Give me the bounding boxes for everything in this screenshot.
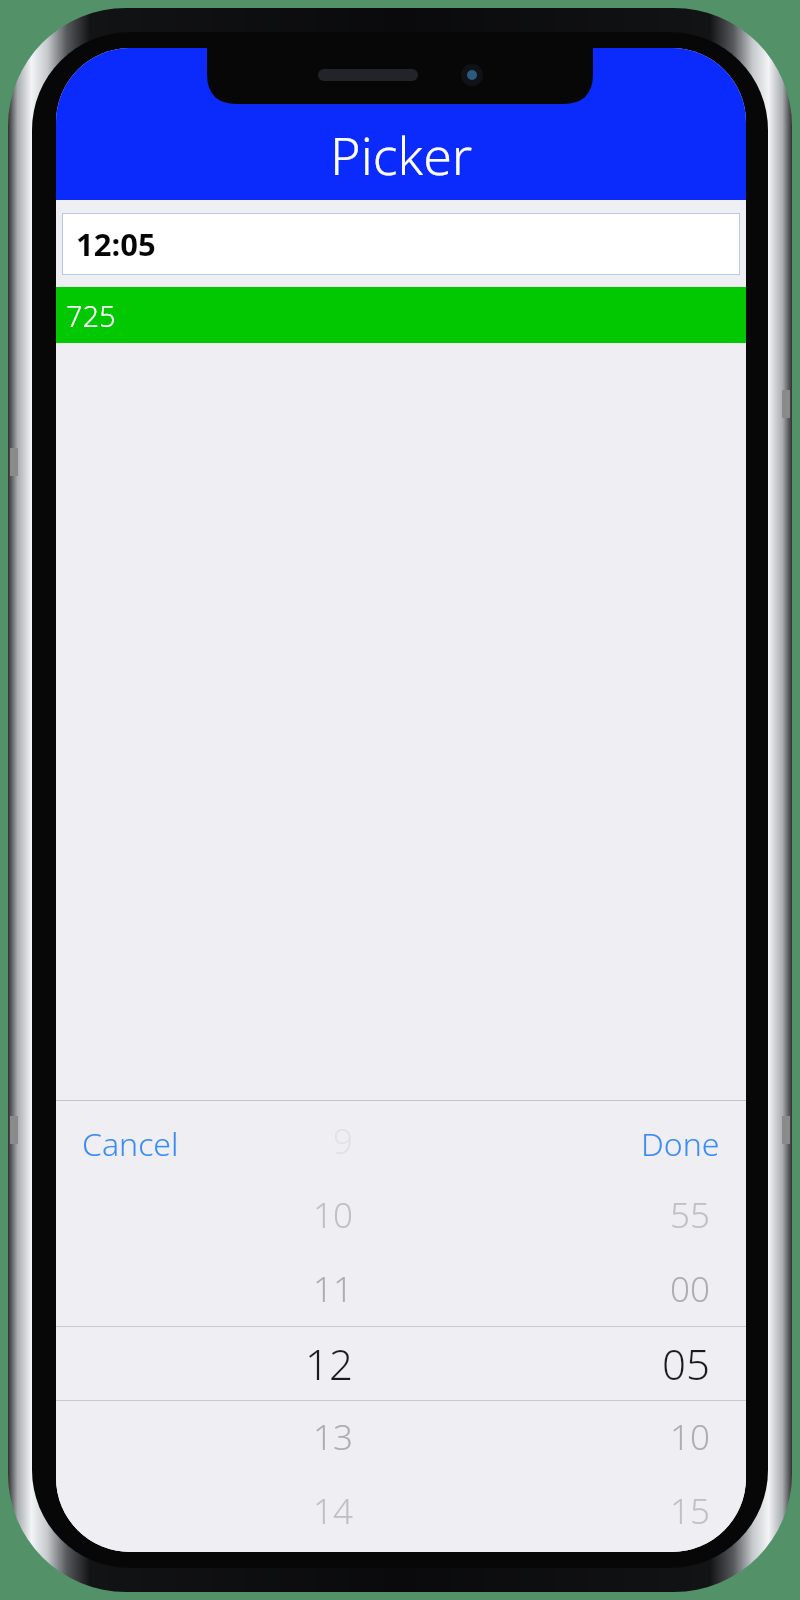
button[interactable]: 725 [56, 287, 746, 343]
staticText: 12 [305, 1335, 353, 1391]
staticText: 14 [313, 1487, 353, 1535]
staticText: 15 [670, 1487, 710, 1535]
staticText: 05 [662, 1335, 710, 1391]
staticText: 10 [313, 1191, 353, 1239]
staticText: Done [641, 1122, 720, 1166]
staticText: 55 [670, 1191, 710, 1239]
staticText: 13 [313, 1413, 353, 1461]
button[interactable]: Done [631, 1112, 730, 1176]
staticText: Cancel [82, 1122, 179, 1166]
button[interactable]: Cancel [72, 1112, 189, 1176]
button[interactable]: Minute picker [401, 1187, 746, 1552]
button[interactable]: 12:05 [62, 213, 740, 275]
staticText: 10 [670, 1413, 710, 1461]
button[interactable]: Hour picker [56, 1187, 401, 1552]
staticText: 725 [66, 296, 116, 335]
staticText: 00 [670, 1265, 710, 1313]
staticText: 9 [333, 1117, 353, 1165]
staticText: 12:05 [76, 223, 156, 265]
staticText: 11 [313, 1265, 353, 1313]
staticText: Picker [330, 119, 473, 190]
button[interactable]: Picker [56, 48, 746, 200]
